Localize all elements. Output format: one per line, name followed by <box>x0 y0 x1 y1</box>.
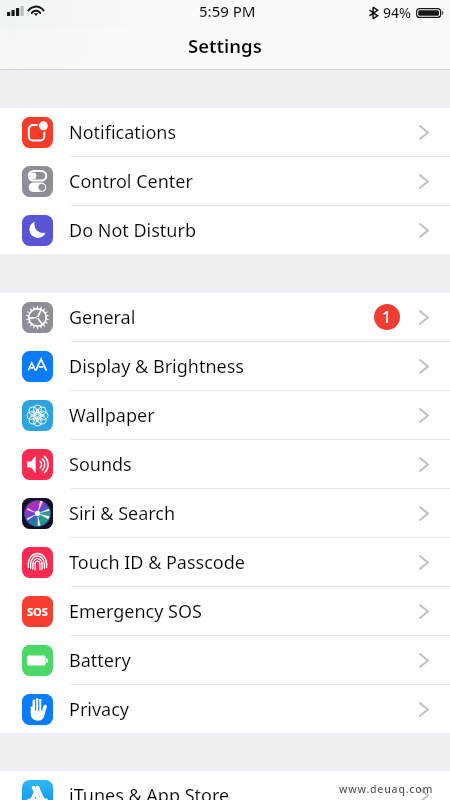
button[interactable]: Battery <box>0 636 450 684</box>
staticText: Privacy <box>69 697 130 722</box>
staticText: Battery <box>69 648 131 673</box>
other: Bluetooth <box>369 7 378 19</box>
button[interactable]: Wallpaper <box>0 391 450 439</box>
staticText: General <box>69 305 136 330</box>
staticText: Notifications <box>69 120 177 145</box>
staticText: www.deuaq.com <box>339 782 434 796</box>
staticText: Sounds <box>69 452 132 477</box>
staticText: Settings <box>188 33 262 58</box>
staticText: 5:59 PM <box>199 1 256 21</box>
staticText: Siri & Search <box>69 501 176 526</box>
button[interactable]: SOS <box>0 587 450 635</box>
button[interactable]: Sounds <box>0 440 450 488</box>
button[interactable]: iTunes & App Store <box>0 771 450 800</box>
button[interactable]: Touch ID & Passcode <box>0 538 450 586</box>
button[interactable]: Do Not Disturb <box>0 206 450 254</box>
staticText: SOS <box>27 604 48 619</box>
button[interactable]: Privacy <box>0 685 450 733</box>
button[interactable]: Siri & Search <box>0 489 450 537</box>
staticText: Touch ID & Passcode <box>69 550 245 575</box>
other: Battery 94 percent <box>416 8 444 18</box>
button[interactable]: Display & Brightness <box>0 342 450 390</box>
button[interactable]: Notifications <box>0 108 450 156</box>
staticText: Control Center <box>69 169 193 194</box>
button[interactable]: General <box>0 293 450 341</box>
staticText: iTunes & App Store <box>69 783 230 800</box>
other: Cellular signal <box>7 6 24 16</box>
staticText: Do Not Disturb <box>69 218 196 243</box>
staticText: Emergency SOS <box>69 599 202 624</box>
button[interactable]: Control Center <box>0 157 450 205</box>
staticText: Display & Brightness <box>69 354 244 379</box>
other: Wi-Fi <box>28 6 44 16</box>
staticText: 94% <box>383 3 411 22</box>
staticText: 1 <box>382 306 392 328</box>
staticText: Wallpaper <box>69 403 155 428</box>
